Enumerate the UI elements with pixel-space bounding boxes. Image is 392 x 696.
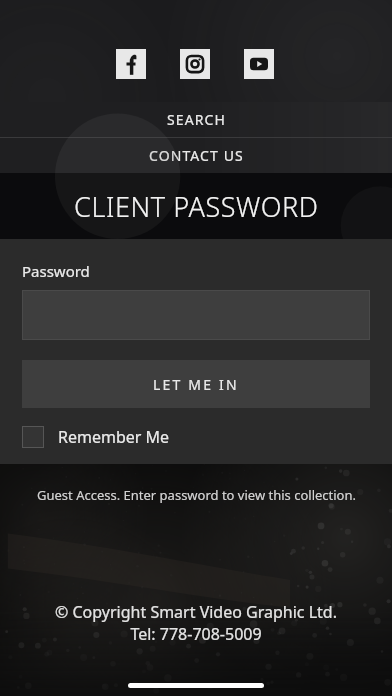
staticText: Remember Me bbox=[58, 426, 170, 448]
button[interactable]: CONTACT US bbox=[0, 138, 392, 173]
staticText: Tel: 778-708-5009 bbox=[130, 623, 262, 645]
button[interactable]: Remember Me bbox=[22, 426, 170, 448]
button[interactable]: Instagram bbox=[180, 49, 210, 79]
staticText: Guest Access. Enter password to view thi… bbox=[37, 486, 356, 504]
button[interactable]: YouTube bbox=[244, 49, 274, 79]
staticText: CONTACT US bbox=[149, 146, 244, 165]
staticText: Password bbox=[22, 261, 90, 281]
staticText: CLIENT PASSWORD bbox=[74, 188, 319, 225]
button[interactable]: SEARCH bbox=[0, 102, 392, 137]
staticText: SEARCH bbox=[167, 110, 226, 129]
staticText: © Copyright Smart Video Graphic Ltd. bbox=[55, 601, 337, 623]
staticText: LET ME IN bbox=[153, 375, 239, 394]
button[interactable]: LET ME IN bbox=[22, 360, 370, 408]
button[interactable]: Facebook bbox=[116, 49, 146, 79]
